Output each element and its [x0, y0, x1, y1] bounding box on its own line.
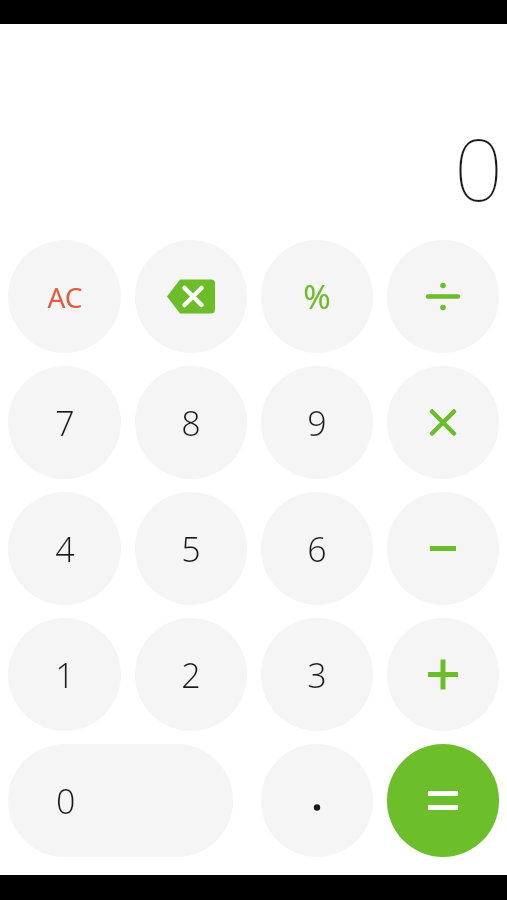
button[interactable]: 5 — [135, 492, 247, 605]
button[interactable]: 9 — [261, 366, 373, 479]
staticText: 0 — [56, 778, 76, 824]
staticText: 2 — [181, 652, 201, 698]
staticText: 3 — [307, 652, 327, 698]
button[interactable]: Backspace — [135, 240, 247, 353]
button[interactable]: 7 — [8, 366, 121, 479]
staticText: 0 — [453, 109, 503, 226]
button[interactable]: Divide — [387, 240, 499, 353]
button[interactable]: 1 — [8, 618, 121, 731]
staticText: AC — [47, 278, 83, 316]
button[interactable]: 6 — [261, 492, 373, 605]
staticText: 9 — [307, 400, 327, 446]
button[interactable]: Minus — [387, 492, 499, 605]
staticText: 5 — [181, 526, 201, 572]
staticText: 7 — [55, 400, 75, 446]
button[interactable]: Plus — [387, 618, 499, 731]
staticText: 1 — [55, 652, 75, 698]
button[interactable]: 0 — [8, 744, 233, 857]
staticText: % — [303, 274, 331, 319]
button[interactable]: Decimal point — [261, 744, 373, 857]
button[interactable]: % — [261, 240, 373, 353]
button[interactable]: AC — [8, 240, 121, 353]
staticText: 4 — [55, 526, 75, 572]
button[interactable]: 4 — [8, 492, 121, 605]
staticText: 6 — [307, 526, 327, 572]
button[interactable]: Equals — [387, 744, 499, 857]
button[interactable]: 2 — [135, 618, 247, 731]
button[interactable]: 8 — [135, 366, 247, 479]
button[interactable]: 3 — [261, 618, 373, 731]
staticText: 8 — [181, 400, 201, 446]
button[interactable]: Multiply — [387, 366, 499, 479]
